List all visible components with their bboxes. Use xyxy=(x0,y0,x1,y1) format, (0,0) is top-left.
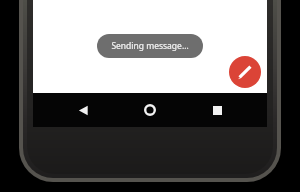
staticText: Sending message… xyxy=(111,40,189,52)
button[interactable]: Compose message xyxy=(229,56,261,88)
button[interactable]: Recent apps xyxy=(200,93,234,127)
button[interactable]: Home xyxy=(133,93,167,127)
button[interactable]: Back xyxy=(66,93,100,127)
button[interactable]: Sending message… xyxy=(97,34,203,58)
